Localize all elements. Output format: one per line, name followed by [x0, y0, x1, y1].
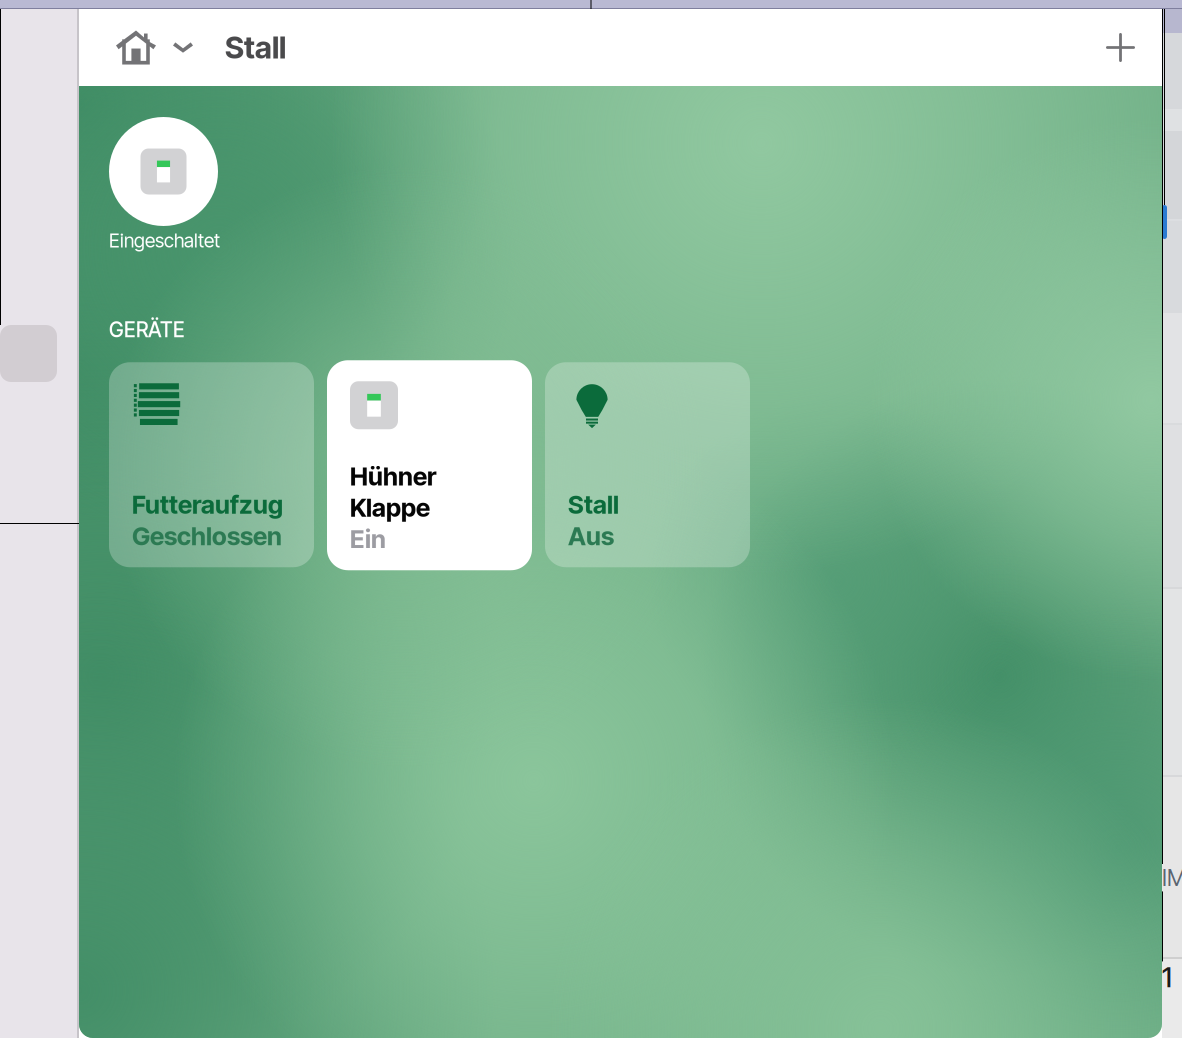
staticText: GERÄTE	[109, 317, 185, 342]
staticText: Aus	[568, 521, 614, 551]
staticText: Geschlossen	[132, 521, 282, 551]
button[interactable]: GERÄTE	[79, 256, 195, 347]
button[interactable]: Stall	[545, 362, 750, 567]
button[interactable]: Hühner	[327, 360, 532, 570]
staticText: Stall	[568, 490, 619, 520]
button[interactable]: Eingeschaltet	[79, 86, 230, 256]
button[interactable]: Choose home	[85, 14, 207, 80]
staticText: Eingeschaltet	[109, 229, 220, 252]
button[interactable]: Stall	[207, 13, 296, 82]
staticText: IM	[1162, 864, 1182, 891]
staticText: Klappe	[350, 493, 430, 523]
staticText: Futteraufzug	[132, 490, 283, 520]
staticText: Hühner	[350, 461, 436, 492]
staticText: Stall	[225, 29, 286, 66]
staticText: Ein	[350, 524, 386, 554]
staticText: 1	[1162, 961, 1172, 994]
button[interactable]: Add accessory	[1086, 16, 1155, 79]
button[interactable]: Futteraufzug	[109, 362, 314, 567]
